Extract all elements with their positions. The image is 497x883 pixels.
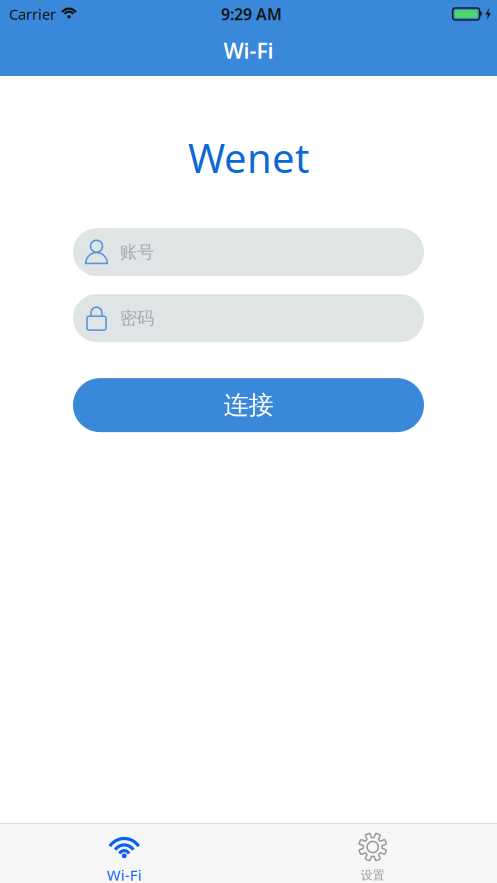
- staticText: 连接: [223, 390, 273, 421]
- staticText: 9:29 AM: [221, 3, 282, 25]
- staticText: 账号: [120, 241, 154, 263]
- staticText: 密码: [120, 307, 154, 329]
- button[interactable]: 密码: [73, 294, 424, 342]
- button[interactable]: Wi-Fi: [0, 823, 248, 883]
- button[interactable]: 设置: [248, 823, 497, 883]
- button[interactable]: 连接: [73, 378, 424, 432]
- staticText: 设置: [361, 868, 385, 883]
- button[interactable]: 账号: [73, 228, 424, 276]
- staticText: Wi-Fi: [107, 865, 142, 883]
- staticText: Carrier: [9, 4, 56, 24]
- staticText: Wi-Fi: [223, 36, 273, 65]
- staticText: Wenet: [188, 131, 309, 184]
